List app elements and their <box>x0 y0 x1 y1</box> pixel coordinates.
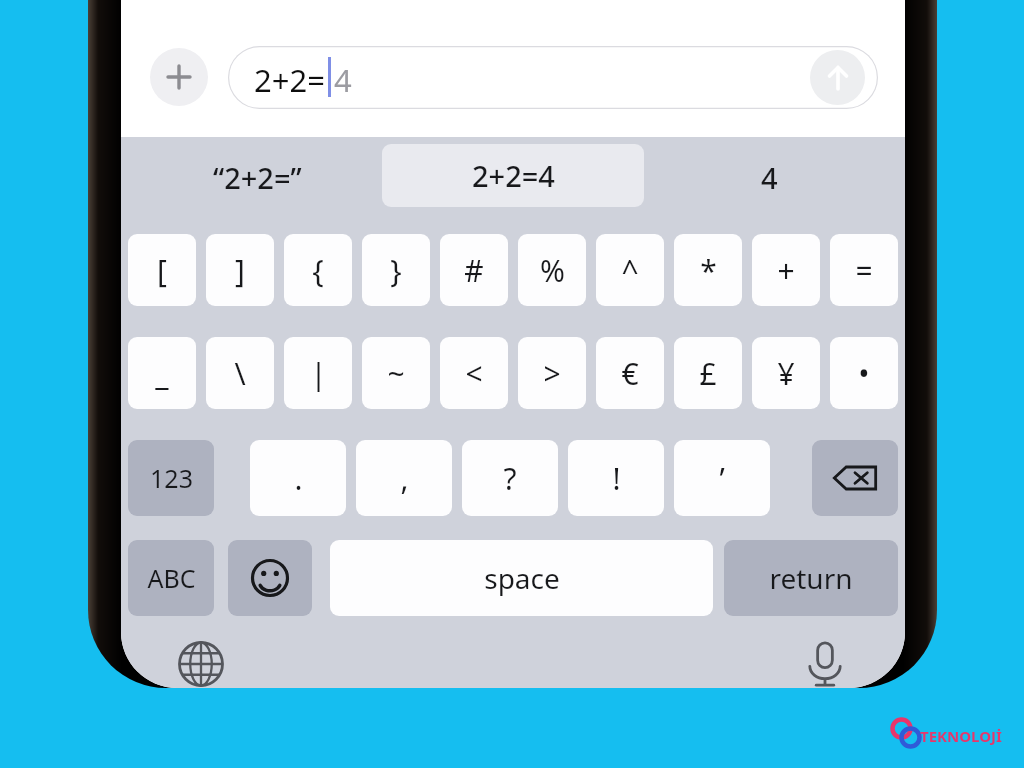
staticText: < <box>465 353 483 394</box>
button[interactable]: [ <box>128 234 196 306</box>
staticText: ] <box>235 250 245 291</box>
staticText: | <box>310 353 327 394</box>
staticText: { <box>312 250 324 291</box>
button[interactable]: { <box>284 234 352 306</box>
staticText: * <box>700 250 717 291</box>
button[interactable]: } <box>362 234 430 306</box>
staticText: # <box>464 250 484 291</box>
button[interactable]: # <box>440 234 508 306</box>
button[interactable]: return <box>724 540 898 616</box>
button[interactable]: _ <box>128 337 196 409</box>
button[interactable]: Dictation <box>793 632 857 688</box>
staticText: 4 <box>334 59 352 101</box>
button[interactable]: ¥ <box>752 337 820 409</box>
button[interactable]: 2+2=4 <box>382 144 644 207</box>
button[interactable]: . <box>250 440 346 516</box>
staticText: ? <box>503 458 517 499</box>
staticText: “2+2=” <box>213 158 302 197</box>
staticText: } <box>390 250 402 291</box>
button[interactable]: , <box>356 440 452 516</box>
button[interactable]: Add attachment <box>150 48 208 106</box>
button[interactable]: ~ <box>362 337 430 409</box>
staticText: 123 <box>150 461 193 495</box>
staticText: ^ <box>621 250 639 291</box>
button[interactable]: ’ <box>674 440 770 516</box>
button[interactable]: % <box>518 234 586 306</box>
button[interactable]: * <box>674 234 742 306</box>
button[interactable]: ] <box>206 234 274 306</box>
staticText: £ <box>699 353 717 394</box>
staticText: ! <box>612 458 621 499</box>
button[interactable]: space <box>330 540 713 616</box>
button[interactable]: \ <box>206 337 274 409</box>
staticText: 4 <box>761 158 778 197</box>
button[interactable]: = <box>830 234 898 306</box>
staticText: . <box>294 458 303 499</box>
button[interactable]: < <box>440 337 508 409</box>
staticText: 2+2=4 <box>472 156 555 195</box>
staticText: ’ <box>719 458 725 499</box>
staticText: = <box>855 250 873 291</box>
staticText: space <box>484 559 560 597</box>
button[interactable]: ABC <box>128 540 214 616</box>
button[interactable]: ^ <box>596 234 664 306</box>
button[interactable]: Emoji <box>228 540 312 616</box>
staticText: % <box>540 250 565 291</box>
staticText: > <box>543 353 561 394</box>
staticText: ABC <box>147 561 196 595</box>
button[interactable]: “2+2=” <box>137 146 377 208</box>
staticText: • <box>858 353 870 394</box>
button[interactable]: Change keyboard <box>169 632 233 688</box>
staticText: ¥ <box>777 353 795 394</box>
button[interactable]: 123 <box>128 440 214 516</box>
button[interactable]: 2+2= <box>228 46 878 109</box>
staticText: 2+2= <box>254 59 325 101</box>
staticText: [ <box>157 250 167 291</box>
button[interactable]: 4 <box>649 146 889 208</box>
button[interactable]: + <box>752 234 820 306</box>
button[interactable]: • <box>830 337 898 409</box>
staticText: ~ <box>387 353 405 394</box>
button[interactable]: € <box>596 337 664 409</box>
button[interactable]: ! <box>568 440 664 516</box>
button[interactable]: Delete <box>812 440 898 516</box>
staticText: _ <box>155 353 169 394</box>
staticText: TEKNOLOJİ <box>920 726 1002 746</box>
staticText: \ <box>234 353 246 394</box>
staticText: € <box>621 353 639 394</box>
button[interactable]: ? <box>462 440 558 516</box>
staticText: + <box>777 250 795 291</box>
staticText: return <box>769 559 853 597</box>
button[interactable]: | <box>284 337 352 409</box>
button[interactable]: > <box>518 337 586 409</box>
button[interactable]: £ <box>674 337 742 409</box>
staticText: , <box>400 458 409 499</box>
button[interactable]: Send <box>810 50 865 105</box>
